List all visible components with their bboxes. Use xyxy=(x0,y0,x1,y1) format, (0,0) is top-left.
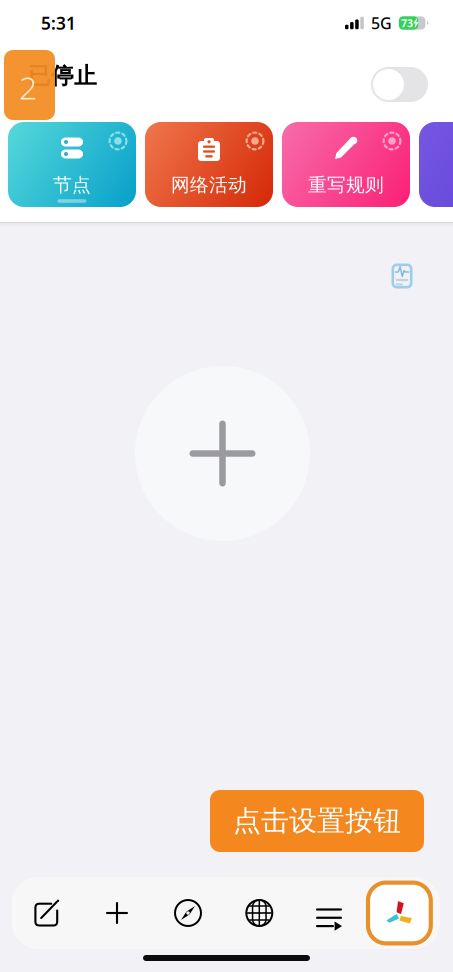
staticText: 5:31 xyxy=(41,11,76,34)
button[interactable]: Surge xyxy=(12,877,440,949)
staticText: 已停止 xyxy=(28,62,97,90)
button[interactable]: 重写规则 xyxy=(282,122,410,207)
button[interactable]: Requests xyxy=(12,877,440,949)
staticText: 2 xyxy=(19,66,37,108)
staticText: 73 xyxy=(401,16,413,30)
staticText: 重写规则 xyxy=(308,173,384,196)
button[interactable]: 点击设置按钮 xyxy=(210,790,424,852)
button[interactable]: Enable proxy xyxy=(371,67,428,102)
button[interactable]: Browser xyxy=(12,877,440,949)
button[interactable]: 模块 xyxy=(419,122,453,207)
staticText: 点击设置按钮 xyxy=(233,804,401,838)
button[interactable]: 网络活动 xyxy=(145,122,273,207)
button[interactable]: New tab xyxy=(12,877,440,949)
staticText: 节点 xyxy=(53,173,91,196)
staticText: 网络活动 xyxy=(171,173,247,196)
button[interactable]: Compose xyxy=(12,877,440,949)
button[interactable]: Add configuration xyxy=(135,366,310,541)
staticText: 5G xyxy=(371,12,392,34)
button[interactable]: Logs xyxy=(389,261,415,291)
button[interactable]: 节点 xyxy=(8,122,136,207)
button[interactable]: Explore xyxy=(12,877,440,949)
